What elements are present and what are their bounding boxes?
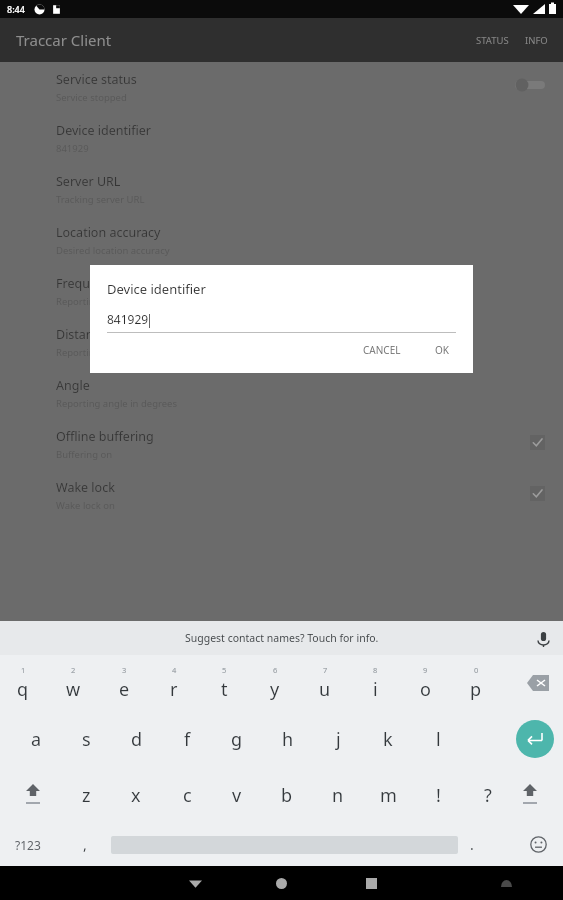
staticText: a: [31, 727, 42, 752]
staticText: Distance: [56, 326, 107, 343]
staticText: Tracking server URL: [56, 193, 145, 206]
staticText: i: [373, 677, 378, 702]
staticText: 4: [172, 665, 177, 675]
button[interactable]: Service status: [0, 62, 563, 113]
staticText: .: [470, 835, 474, 854]
button[interactable]: Suggest contact names? Touch for info.: [0, 621, 563, 655]
staticText: Buffering on: [56, 448, 113, 461]
staticText: 8: [373, 665, 378, 675]
button[interactable]: 3: [108, 655, 140, 711]
staticText: Server URL: [56, 173, 121, 190]
button[interactable]: 5: [208, 655, 240, 711]
staticText: INFO: [525, 34, 548, 47]
button[interactable]: ?123: [8, 825, 48, 865]
staticText: 0: [474, 665, 479, 675]
staticText: Frequency: [56, 275, 118, 292]
staticText: p: [470, 677, 482, 702]
staticText: f: [184, 727, 191, 752]
staticText: k: [383, 727, 393, 752]
button[interactable]: c: [171, 767, 203, 823]
staticText: e: [119, 677, 130, 702]
button[interactable]: v: [221, 767, 253, 823]
button[interactable]: 0: [460, 655, 492, 711]
staticText: 9: [423, 665, 428, 675]
staticText: ?: [484, 783, 492, 808]
staticText: Reporting angle in degrees: [56, 397, 178, 410]
button[interactable]: b: [271, 767, 303, 823]
staticText: o: [420, 677, 431, 702]
staticText: r: [170, 677, 178, 702]
staticText: n: [332, 783, 344, 808]
staticText: Device identifier: [56, 122, 151, 139]
button[interactable]: Shift: [18, 775, 48, 815]
button[interactable]: s: [70, 711, 102, 767]
staticText: l: [436, 727, 441, 752]
button[interactable]: !: [422, 767, 454, 823]
button[interactable]: OK: [425, 337, 459, 363]
staticText: t: [221, 677, 228, 702]
button[interactable]: Device identifier: [0, 113, 563, 164]
staticText: h: [282, 727, 294, 752]
button[interactable]: Voice input: [536, 631, 551, 646]
button[interactable]: Enabled checkbox: [530, 486, 545, 501]
staticText: STATUS: [476, 34, 509, 47]
button[interactable]: f: [171, 711, 203, 767]
staticText: CANCEL: [363, 343, 401, 357]
button[interactable]: g: [221, 711, 253, 767]
button[interactable]: Emoji: [530, 836, 547, 853]
button[interactable]: 7: [309, 655, 341, 711]
button[interactable]: h: [272, 711, 304, 767]
staticText: 3: [122, 665, 127, 675]
button[interactable]: Enabled checkbox: [530, 435, 545, 450]
button[interactable]: x: [120, 767, 152, 823]
button[interactable]: Server URL: [0, 164, 563, 215]
button[interactable]: Frequency: [0, 266, 563, 317]
button[interactable]: k: [372, 711, 404, 767]
button[interactable]: Back: [178, 866, 212, 900]
button[interactable]: l: [422, 711, 454, 767]
button[interactable]: CANCEL: [353, 337, 411, 363]
staticText: 5: [222, 665, 227, 675]
button[interactable]: .: [459, 823, 485, 866]
button[interactable]: 2: [57, 655, 89, 711]
staticText: !: [436, 783, 441, 808]
staticText: u: [319, 677, 331, 702]
button[interactable]: Angle: [0, 368, 563, 419]
button[interactable]: ?: [472, 767, 504, 823]
button[interactable]: 4: [158, 655, 190, 711]
button[interactable]: 9: [409, 655, 441, 711]
button[interactable]: INFO: [520, 24, 553, 57]
button[interactable]: 1: [7, 655, 39, 711]
button[interactable]: Enter: [516, 720, 554, 758]
staticText: Location accuracy: [56, 224, 161, 241]
button[interactable]: Service toggle: [515, 78, 545, 92]
button[interactable]: Wake lock: [0, 470, 563, 521]
button[interactable]: a: [20, 711, 52, 767]
button[interactable]: Home: [264, 866, 298, 900]
button[interactable]: d: [121, 711, 153, 767]
button[interactable]: ,: [70, 823, 100, 866]
button[interactable]: STATUS: [471, 24, 514, 57]
staticText: b: [281, 783, 293, 808]
staticText: Desired location accuracy: [56, 244, 170, 257]
button[interactable]: Keyboard: [491, 868, 521, 898]
button[interactable]: Location accuracy: [0, 215, 563, 266]
button[interactable]: m: [372, 767, 404, 823]
button[interactable]: Distance: [0, 317, 563, 368]
staticText: Service status: [56, 71, 137, 88]
staticText: OK: [435, 343, 449, 357]
button[interactable]: Shift: [515, 775, 545, 815]
staticText: 8:44: [7, 3, 25, 15]
staticText: 6: [273, 665, 278, 675]
staticText: Device identifier: [107, 280, 206, 298]
button[interactable]: 8: [359, 655, 391, 711]
button[interactable]: Backspace: [527, 675, 549, 691]
button[interactable]: n: [322, 767, 354, 823]
button[interactable]: Offline buffering: [0, 419, 563, 470]
staticText: c: [183, 783, 192, 808]
button[interactable]: j: [322, 711, 354, 767]
button[interactable]: Recents: [354, 866, 388, 900]
button[interactable]: z: [70, 767, 102, 823]
button[interactable]: 6: [259, 655, 291, 711]
